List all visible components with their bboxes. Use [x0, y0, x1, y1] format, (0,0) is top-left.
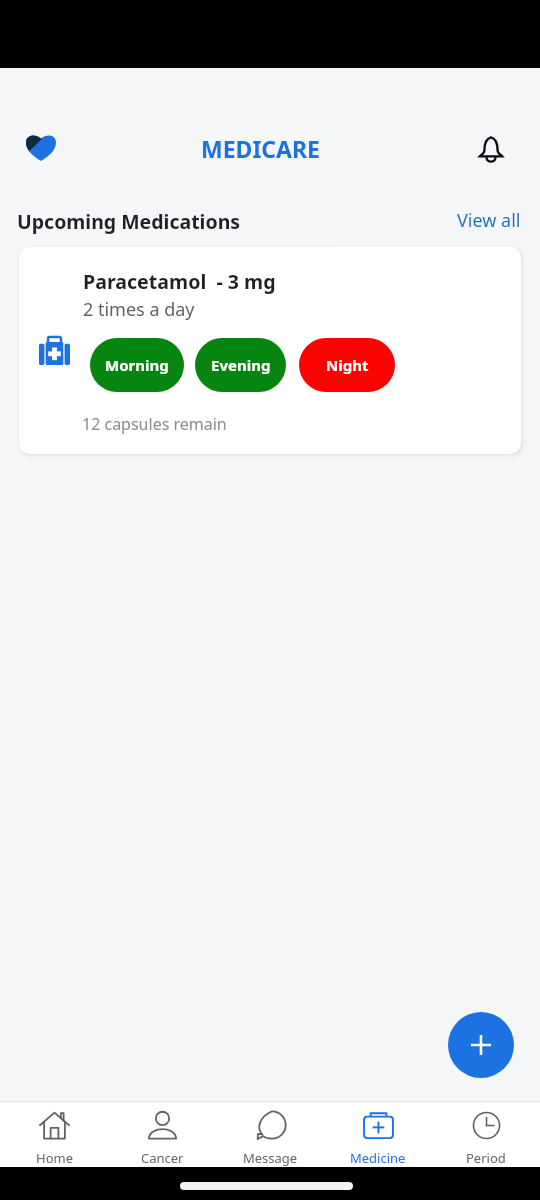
- staticText: 12 capsules remain: [82, 413, 227, 435]
- button[interactable]: Notifications: [469, 127, 513, 171]
- button[interactable]: Morning: [90, 338, 184, 392]
- staticText: Period: [466, 1149, 506, 1167]
- button[interactable]: Night: [299, 338, 395, 392]
- staticText: View all: [457, 208, 521, 233]
- staticText: Night: [326, 355, 369, 375]
- button[interactable]: Message: [216, 1103, 324, 1167]
- staticText: Medicine: [350, 1149, 406, 1167]
- button[interactable]: Add medication: [448, 1012, 514, 1078]
- button[interactable]: Medicine: [324, 1103, 432, 1167]
- staticText: Morning: [105, 355, 169, 375]
- button[interactable]: Home: [0, 1103, 108, 1167]
- staticText: Evening: [211, 355, 271, 375]
- button[interactable]: Favorites: [19, 125, 63, 169]
- staticText: 2 times a day: [83, 297, 195, 322]
- staticText: Cancer: [141, 1149, 184, 1167]
- staticText: Paracetamol - 3 mg: [83, 268, 276, 295]
- staticText: Upcoming Medications: [17, 208, 241, 235]
- button[interactable]: View all: [449, 200, 529, 241]
- button[interactable]: Paracetamol - 3 mg: [19, 247, 521, 454]
- staticText: MEDICARE: [201, 133, 321, 164]
- button[interactable]: Cancer: [108, 1103, 216, 1167]
- staticText: Message: [243, 1149, 298, 1167]
- button[interactable]: Evening: [195, 338, 286, 392]
- button[interactable]: Period: [432, 1103, 540, 1167]
- staticText: Home: [36, 1149, 73, 1167]
